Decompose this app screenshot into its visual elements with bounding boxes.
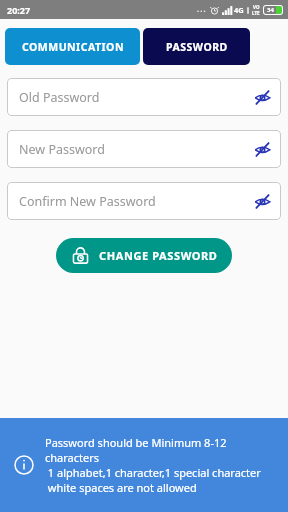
button[interactable]: New Password [7, 130, 281, 168]
staticText: 34 [267, 6, 274, 14]
button[interactable]: Old Password [7, 78, 281, 116]
staticText: white spaces are not allowed [45, 480, 197, 495]
button[interactable]: Show password [243, 78, 281, 116]
button[interactable]: PASSWORD [143, 28, 250, 65]
button[interactable]: Password should be Minimum 8-12 [0, 418, 288, 512]
button[interactable]: COMMUNICATION [5, 28, 140, 65]
staticText: Confirm New Password [19, 193, 243, 210]
button[interactable]: CHANGE PASSWORD [56, 238, 232, 273]
button[interactable]: Show password [243, 182, 281, 220]
staticText: PASSWORD [166, 40, 228, 54]
staticText: characters [45, 450, 100, 465]
button[interactable]: Show password [243, 130, 281, 168]
staticText: Password should be Minimum 8-12 [45, 435, 227, 450]
staticText: 20:27 [7, 4, 31, 16]
staticText: CHANGE PASSWORD [99, 248, 218, 263]
staticText: New Password [19, 141, 243, 158]
staticText: VO [253, 4, 260, 10]
button[interactable]: Confirm New Password [7, 182, 281, 220]
staticText: Old Password [19, 89, 243, 106]
staticText: COMMUNICATION [22, 40, 124, 54]
staticText: 1 alphabet,1 character,1 special charact… [45, 465, 261, 480]
staticText: LTE [252, 10, 260, 16]
staticText: 4G [234, 5, 244, 15]
